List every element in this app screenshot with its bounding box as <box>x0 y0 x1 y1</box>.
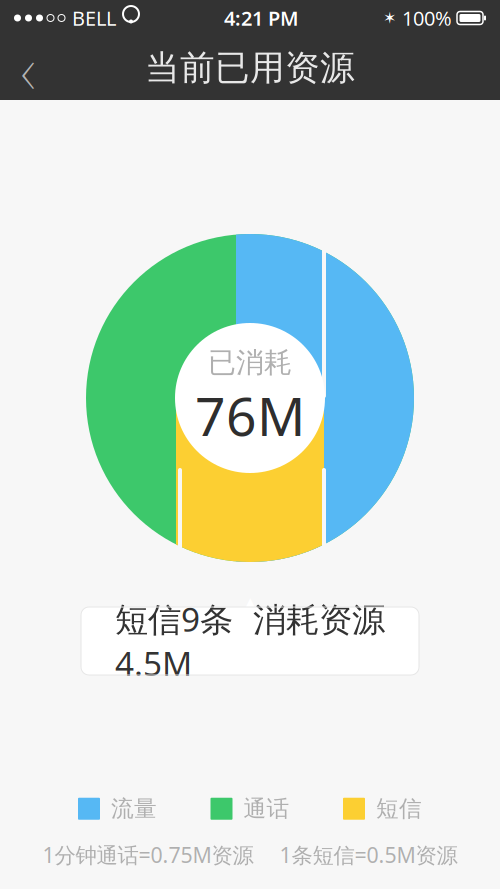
staticText: 通话 <box>243 795 289 823</box>
staticText: 已消耗 <box>208 345 292 380</box>
staticText: ▲ <box>241 592 258 618</box>
staticText: 1分钟通话=0.75M资源 <box>42 841 253 869</box>
staticText: ‹ <box>20 22 35 114</box>
staticText: BELL <box>72 5 116 31</box>
staticText: 当前已用资源 <box>145 47 355 89</box>
staticText: 100% <box>402 5 452 31</box>
staticText: 短信 <box>376 795 422 823</box>
button[interactable]: Back <box>0 36 56 100</box>
staticText: 4:21 PM <box>224 5 299 31</box>
staticText: 短信9条 消耗资源4.5M <box>115 597 385 685</box>
staticText: ✶ <box>383 9 396 27</box>
staticText: 流量 <box>111 795 157 823</box>
staticText: 76M <box>195 380 305 451</box>
staticText: 1条短信=0.5M资源 <box>279 841 457 869</box>
